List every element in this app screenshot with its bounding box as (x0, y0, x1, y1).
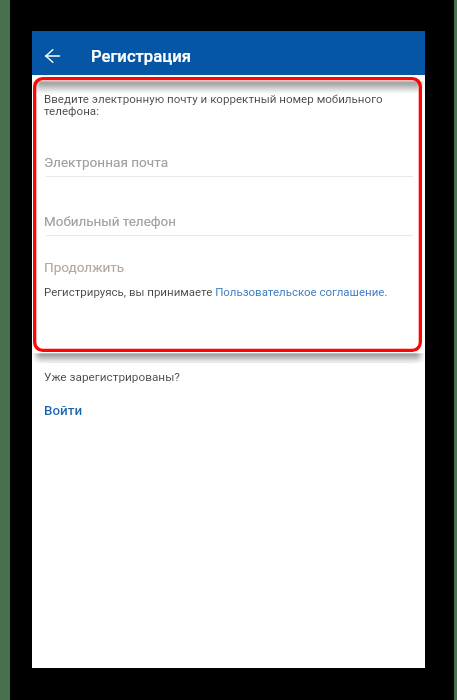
button[interactable]: Мобильный телефон (32, 207, 425, 236)
staticText: Регистрируясь, вы принимаете Пользовател… (44, 285, 388, 298)
button[interactable]: Back (36, 37, 72, 73)
staticText: Войти (44, 403, 83, 419)
staticText: Введите электронную почту и корректный н… (44, 92, 389, 118)
staticText: Электронная почта (44, 154, 169, 170)
staticText: Продолжить (44, 259, 125, 275)
button[interactable]: Электронная почта (32, 147, 425, 177)
staticText: Мобильный телефон (44, 214, 176, 230)
button[interactable]: Продолжить (44, 259, 125, 275)
button[interactable]: Войти (44, 403, 83, 419)
staticText: Регистрация (91, 47, 191, 66)
staticText: Уже зарегистрированы? (44, 370, 180, 384)
